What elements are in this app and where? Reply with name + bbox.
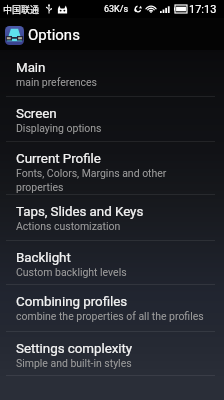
button[interactable]: Main: [0, 50, 224, 94]
staticText: Combining profiles: [16, 294, 128, 310]
staticText: 63K/s: [104, 4, 129, 15]
staticText: 17:13: [189, 3, 217, 16]
button[interactable]: Current Profile: [0, 141, 224, 199]
button[interactable]: Screen: [0, 96, 224, 140]
staticText: Screen: [16, 106, 57, 122]
staticText: Backlight: [16, 250, 71, 266]
staticText: Displaying options: [16, 122, 102, 134]
staticText: Actions customization: [16, 220, 121, 232]
staticText: combine the properties of all the profil…: [16, 310, 204, 322]
staticText: Custom backlight levels: [16, 266, 127, 278]
staticText: Fonts, Colors, Margins and other propert…: [16, 167, 216, 193]
button[interactable]: Settings complexity: [0, 331, 224, 375]
button[interactable]: Backlight: [0, 240, 224, 284]
staticText: main preferences: [16, 76, 97, 88]
button[interactable]: Options: [0, 18, 224, 50]
staticText: Taps, Slides and Keys: [16, 204, 144, 220]
staticText: Simple and built-in styles: [16, 357, 132, 369]
button[interactable]: Taps, Slides and Keys: [0, 194, 224, 238]
staticText: Main: [16, 60, 46, 76]
staticText: 中国联通: [3, 3, 40, 16]
staticText: Options: [28, 26, 80, 44]
button[interactable]: Combining profiles: [0, 284, 224, 328]
staticText: Current Profile: [16, 151, 101, 167]
staticText: Settings complexity: [16, 341, 133, 357]
